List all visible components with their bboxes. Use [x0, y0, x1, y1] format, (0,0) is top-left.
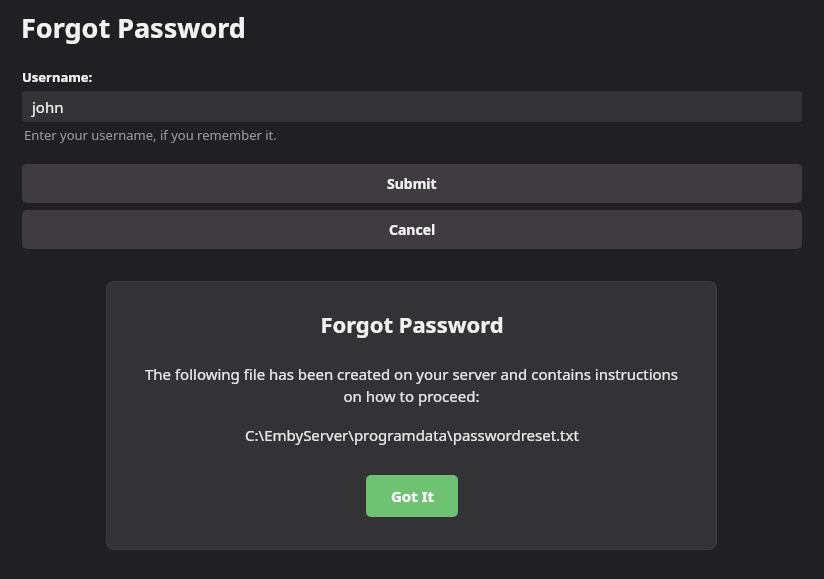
staticText: Cancel: [389, 220, 436, 239]
staticText: Enter your username, if you remember it.: [24, 126, 277, 144]
button[interactable]: Cancel: [22, 210, 802, 249]
button[interactable]: john: [22, 91, 802, 122]
staticText: Username:: [22, 68, 93, 86]
staticText: Forgot Password: [21, 9, 246, 46]
staticText: C:\EmbyServer\programdata\passwordreset.…: [245, 425, 579, 445]
staticText: The following file has been created on y…: [134, 364, 689, 407]
staticText: Forgot Password: [320, 309, 504, 339]
staticText: Submit: [387, 174, 437, 193]
button[interactable]: Submit: [22, 164, 802, 203]
staticText: john: [32, 97, 64, 117]
staticText: Got It: [391, 486, 434, 506]
button[interactable]: Got It: [366, 475, 458, 517]
